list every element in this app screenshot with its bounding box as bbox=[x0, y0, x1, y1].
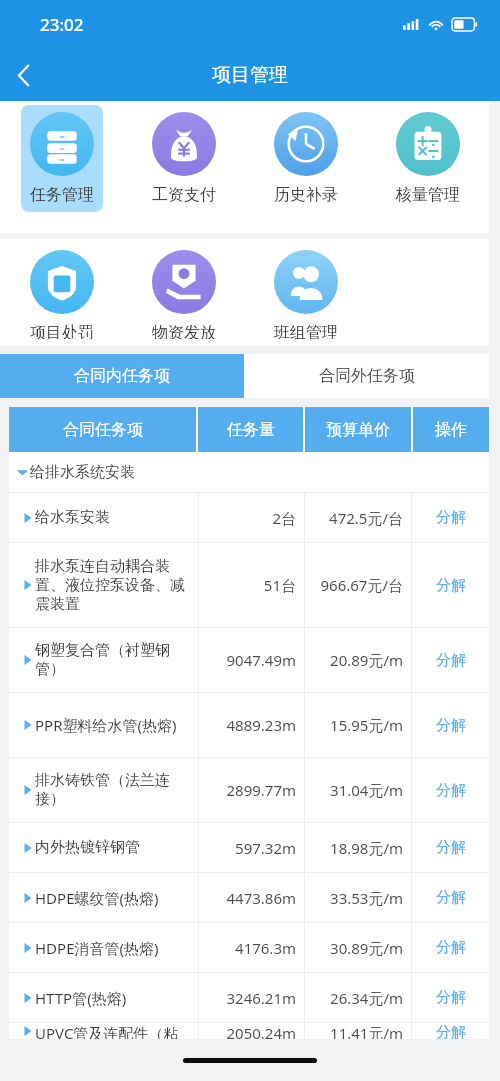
staticText: 26.34元/m bbox=[330, 988, 403, 1008]
staticText: 分解 bbox=[436, 938, 466, 957]
staticText: 11.41元/m bbox=[330, 1023, 403, 1039]
staticText: 内外热镀锌钢管 bbox=[35, 838, 194, 857]
staticText: 分解 bbox=[436, 716, 466, 735]
staticText: 物资发放 bbox=[152, 323, 216, 339]
button[interactable]: 工资支付 bbox=[123, 101, 245, 233]
button[interactable]: 排水铸铁管（法兰连接） bbox=[9, 758, 489, 822]
staticText: 31.04元/m bbox=[330, 780, 403, 800]
button[interactable]: 物资发放 bbox=[123, 239, 245, 346]
button[interactable]: 合同外任务项 bbox=[244, 354, 489, 398]
staticText: 项目管理 bbox=[212, 63, 288, 87]
staticText: 预算单价 bbox=[326, 420, 390, 440]
staticText: PPR塑料给水管(热熔) bbox=[35, 715, 194, 735]
staticText: 核量管理 bbox=[396, 185, 460, 205]
button[interactable]: UPVC管及连配件（粘接） bbox=[9, 1023, 489, 1039]
button[interactable]: 分解 bbox=[412, 693, 489, 757]
button[interactable]: 分解 bbox=[412, 873, 489, 922]
staticText: 15.95元/m bbox=[330, 715, 403, 735]
staticText: 任务量 bbox=[227, 420, 275, 440]
button[interactable]: HTTP管(热熔) bbox=[9, 973, 489, 1022]
staticText: 分解 bbox=[436, 508, 466, 527]
staticText: 分解 bbox=[436, 888, 466, 907]
button[interactable]: 任务量 bbox=[198, 407, 303, 452]
staticText: 班组管理 bbox=[274, 323, 338, 339]
button[interactable]: 排水泵连自动耦合装置、液位控泵设备、减震装置 bbox=[9, 543, 489, 627]
button[interactable]: HDPE消音管(热熔) bbox=[9, 923, 489, 972]
staticText: 合同任务项 bbox=[63, 420, 143, 440]
staticText: 2台 bbox=[272, 508, 296, 528]
button[interactable]: 分解 bbox=[412, 493, 489, 542]
staticText: 排水泵连自动耦合装置、液位控泵设备、减震装置 bbox=[35, 557, 194, 614]
staticText: 任务管理 bbox=[30, 185, 94, 205]
staticText: 23:02 bbox=[40, 13, 84, 36]
button[interactable]: 历史补录 bbox=[245, 101, 367, 233]
button[interactable]: 预算单价 bbox=[305, 407, 411, 452]
staticText: 合同外任务项 bbox=[319, 366, 415, 386]
button[interactable]: HDPE螺纹管(热熔) bbox=[9, 873, 489, 922]
staticText: 操作 bbox=[435, 420, 467, 440]
staticText: 2899.77m bbox=[226, 780, 296, 800]
staticText: 2050.24m bbox=[226, 1023, 296, 1039]
button[interactable]: PPR塑料给水管(热熔) bbox=[9, 693, 489, 757]
button[interactable]: 分解 bbox=[412, 543, 489, 627]
staticText: 分解 bbox=[436, 576, 466, 595]
staticText: 51台 bbox=[263, 575, 296, 595]
button[interactable]: 内外热镀锌钢管 bbox=[9, 823, 489, 872]
button[interactable]: 分解 bbox=[412, 973, 489, 1022]
button[interactable]: 给水泵安装 bbox=[9, 493, 489, 542]
staticText: 分解 bbox=[436, 838, 466, 857]
staticText: 9047.49m bbox=[226, 650, 296, 670]
button[interactable]: 班组管理 bbox=[245, 239, 367, 346]
staticText: 597.32m bbox=[235, 838, 296, 858]
button[interactable]: 任务管理 bbox=[0, 101, 123, 233]
staticText: 30.89元/m bbox=[330, 938, 403, 958]
staticText: 分解 bbox=[436, 1023, 466, 1039]
staticText: 项目处罚 bbox=[30, 323, 94, 339]
button[interactable]: 给排水系统安装 bbox=[9, 452, 489, 492]
staticText: 20.89元/m bbox=[330, 650, 403, 670]
button[interactable]: 合同任务项 bbox=[9, 407, 196, 452]
staticText: 给水泵安装 bbox=[35, 508, 194, 527]
staticText: 33.53元/m bbox=[330, 888, 403, 908]
staticText: 472.5元/台 bbox=[329, 508, 403, 528]
staticText: 排水铸铁管（法兰连接） bbox=[35, 771, 194, 809]
button[interactable]: 项目处罚 bbox=[0, 239, 123, 346]
button[interactable]: 合同内任务项 bbox=[0, 354, 244, 398]
staticText: HDPE螺纹管(热熔) bbox=[35, 888, 194, 908]
staticText: 工资支付 bbox=[152, 185, 216, 205]
button[interactable]: 分解 bbox=[412, 823, 489, 872]
button[interactable]: 钢塑复合管（衬塑钢管） bbox=[9, 628, 489, 692]
staticText: 966.67元/台 bbox=[320, 575, 403, 595]
staticText: 分解 bbox=[436, 988, 466, 1007]
staticText: 钢塑复合管（衬塑钢管） bbox=[35, 641, 194, 679]
staticText: UPVC管及连配件（粘接） bbox=[35, 1023, 194, 1039]
button[interactable]: 分解 bbox=[412, 923, 489, 972]
staticText: 分解 bbox=[436, 781, 466, 800]
staticText: 给排水系统安装 bbox=[30, 463, 135, 482]
staticText: 合同内任务项 bbox=[74, 366, 170, 386]
staticText: 历史补录 bbox=[274, 185, 338, 205]
staticText: HTTP管(热熔) bbox=[35, 988, 194, 1008]
staticText: 4473.86m bbox=[226, 888, 296, 908]
button[interactable]: 分解 bbox=[412, 628, 489, 692]
staticText: 4889.23m bbox=[226, 715, 296, 735]
button[interactable]: 分解 bbox=[412, 758, 489, 822]
staticText: HDPE消音管(热熔) bbox=[35, 938, 194, 958]
button[interactable]: 操作 bbox=[413, 407, 489, 452]
button[interactable]: Back bbox=[0, 51, 48, 99]
button[interactable]: 核量管理 bbox=[367, 101, 489, 233]
staticText: 4176.3m bbox=[235, 938, 296, 958]
staticText: 18.98元/m bbox=[330, 838, 403, 858]
staticText: 分解 bbox=[436, 651, 466, 670]
staticText: 3246.21m bbox=[226, 988, 296, 1008]
button[interactable]: 分解 bbox=[412, 1023, 489, 1039]
